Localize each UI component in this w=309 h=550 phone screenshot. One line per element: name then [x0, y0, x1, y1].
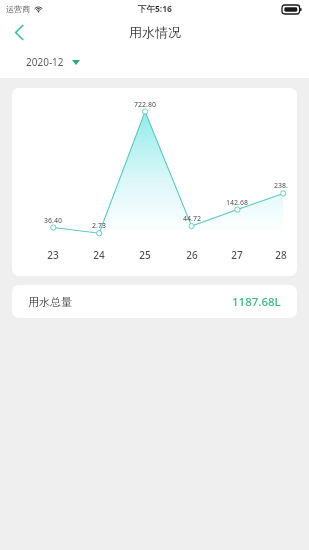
staticText: 142.68 [219, 198, 255, 208]
staticText: 用水总量 [28, 295, 72, 309]
staticText: 23 [35, 248, 71, 262]
staticText: 26 [174, 248, 210, 262]
staticText: 用水情况 [129, 24, 181, 40]
staticText: 238. [265, 181, 297, 191]
staticText: 2020-12 [26, 55, 64, 69]
staticText: 25 [127, 248, 163, 262]
button[interactable]: Back [0, 18, 38, 46]
staticText: 44.72 [174, 214, 210, 224]
staticText: 28 [265, 248, 297, 262]
button[interactable]: 用水总量 [12, 285, 297, 318]
staticText: 27 [219, 248, 255, 262]
staticText: 24 [81, 248, 117, 262]
staticText: 下午5:16 [138, 3, 172, 15]
staticText: 36.40 [35, 216, 71, 226]
button[interactable]: 2020-12 [14, 52, 102, 72]
staticText: 运营商 [6, 4, 30, 14]
staticText: 2.73 [81, 221, 117, 231]
staticText: 722.80 [127, 100, 163, 110]
staticText: 1187.68L [232, 294, 281, 310]
